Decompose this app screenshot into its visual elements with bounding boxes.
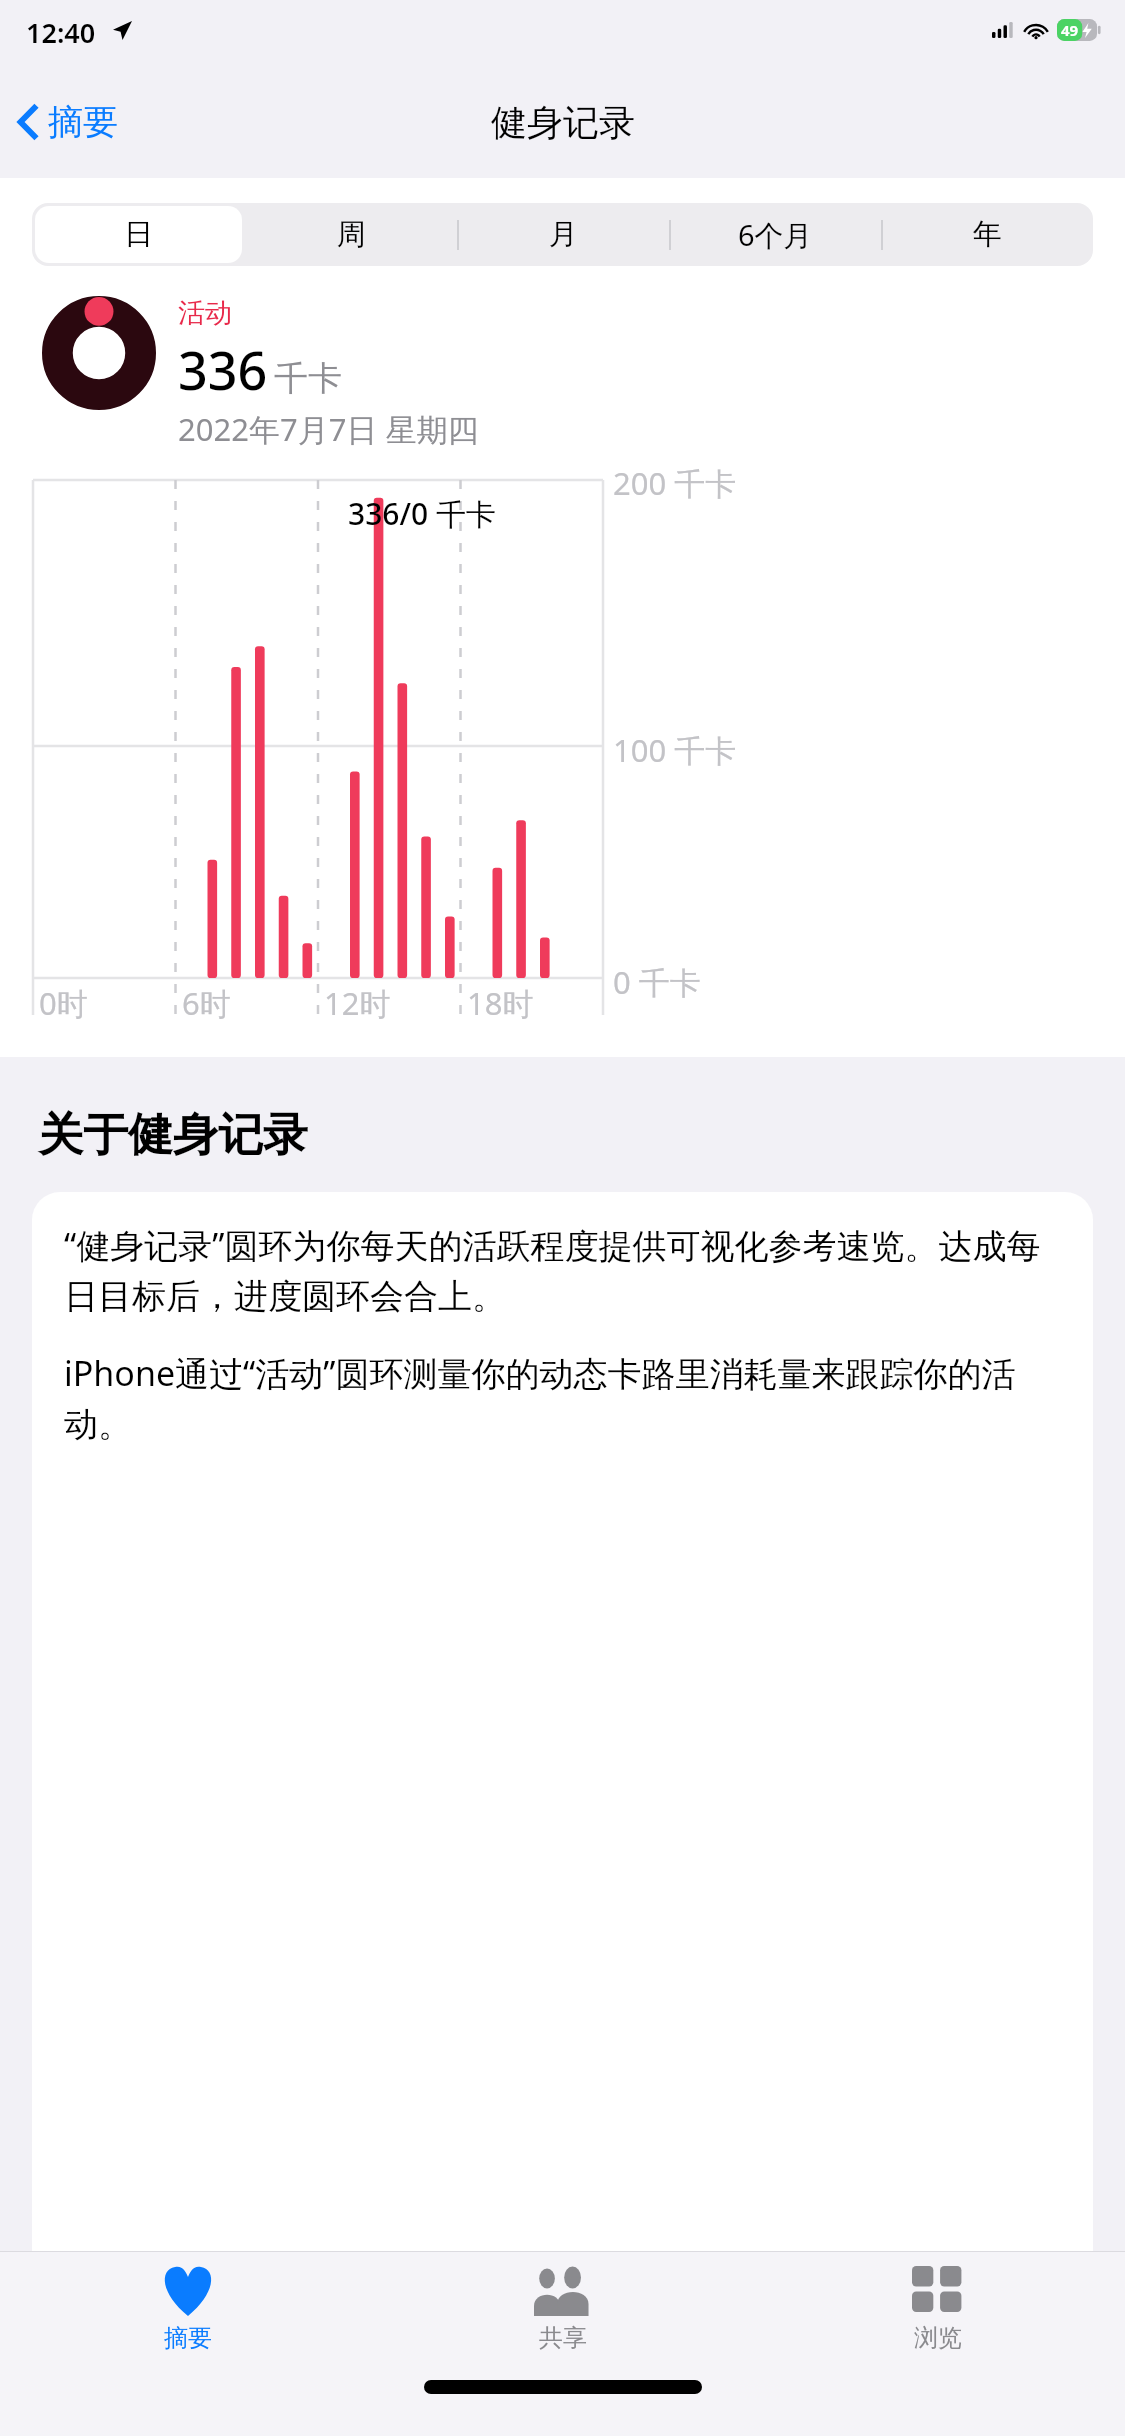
staticText: 关于健身记录 (38, 1107, 308, 1164)
staticText: 49 (1061, 20, 1079, 40)
staticText: 千卡 (274, 357, 342, 400)
button[interactable]: 6个月 (669, 203, 881, 266)
staticText: 0 千卡 (613, 961, 701, 1003)
button[interactable]: 共享 (375, 2252, 750, 2380)
button[interactable]: 月 (457, 203, 669, 266)
button[interactable]: 浏览 (750, 2252, 1125, 2380)
button[interactable]: 摘要 (0, 90, 132, 154)
staticText: 336/0 千卡 (348, 493, 496, 534)
staticText: 6个月 (738, 215, 813, 255)
staticText: 摘要 (48, 100, 118, 144)
staticText: 日 (124, 216, 153, 253)
staticText: 周 (337, 216, 366, 253)
staticText: 12:40 (26, 14, 96, 51)
staticText: 年 (973, 216, 1002, 253)
staticText: 200 千卡 (613, 462, 737, 504)
other: 摘要 (161, 2266, 215, 2316)
staticText: 6时 (182, 982, 231, 1024)
button[interactable]: 年 (881, 203, 1093, 266)
staticText: “健身记录”圆环为你每天的活跃程度提供可视化参考速览。达成每日目标后，进度圆环会… (64, 1222, 1067, 1318)
staticText: 浏览 (914, 2323, 962, 2353)
staticText: 2022年7月7日 星期四 (178, 408, 479, 450)
staticText: 336 (178, 334, 268, 405)
staticText: iPhone通过“活动”圆环测量你的动态卡路里消耗量来跟踪你的活动。 (64, 1350, 1067, 1446)
staticText: 18时 (467, 982, 534, 1024)
button[interactable]: 摘要 (0, 2252, 375, 2380)
button[interactable]: 周 (245, 203, 457, 266)
other: 共享 (534, 2266, 592, 2316)
staticText: 100 千卡 (613, 729, 737, 771)
button[interactable]: 日 (32, 203, 245, 266)
staticText: 摘要 (164, 2323, 212, 2353)
other: 浏览 (912, 2266, 964, 2316)
staticText: 健身记录 (491, 100, 635, 145)
staticText: 月 (549, 216, 578, 253)
staticText: 活动 (178, 296, 232, 330)
staticText: 0时 (39, 982, 88, 1024)
staticText: 12时 (324, 982, 391, 1024)
staticText: 共享 (539, 2323, 587, 2353)
